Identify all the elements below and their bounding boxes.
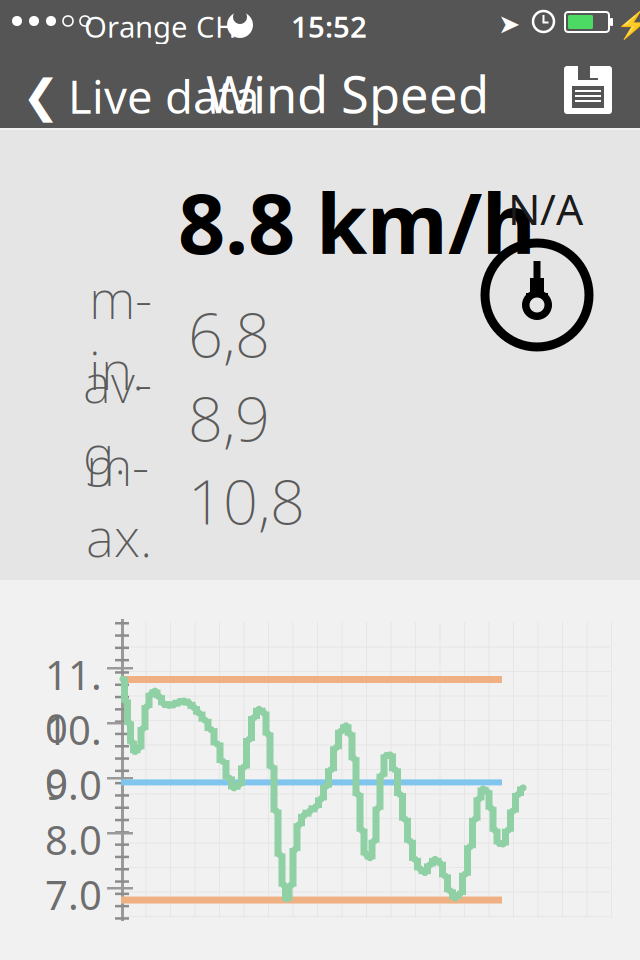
staticText: 7.0 (45, 868, 102, 921)
button[interactable]: ❮ (8, 58, 273, 134)
staticText: Live data (68, 66, 259, 126)
staticText: max. (86, 430, 152, 572)
staticText: 8.8 km/h (178, 167, 536, 277)
staticText: 11.0 (45, 648, 102, 754)
staticText: 8,9 (188, 377, 270, 458)
staticText: 9.0 (45, 758, 102, 811)
staticText: ⚡ (616, 10, 640, 40)
staticText: min. (89, 263, 152, 405)
staticText: 10.0 (45, 703, 102, 809)
staticText: 10,8 (188, 460, 305, 541)
staticText: 6,8 (188, 293, 270, 374)
staticText: avg. (83, 347, 152, 489)
staticText: ❮ (22, 70, 60, 122)
staticText: ➤ (498, 9, 520, 39)
staticText: 15:52 (291, 7, 367, 46)
staticText: Wind Speed (206, 60, 489, 127)
staticText: N/A (508, 180, 583, 237)
button[interactable]: Save (552, 54, 624, 126)
staticText: Orange CH (84, 7, 237, 46)
staticText: 8.0 (45, 813, 102, 866)
